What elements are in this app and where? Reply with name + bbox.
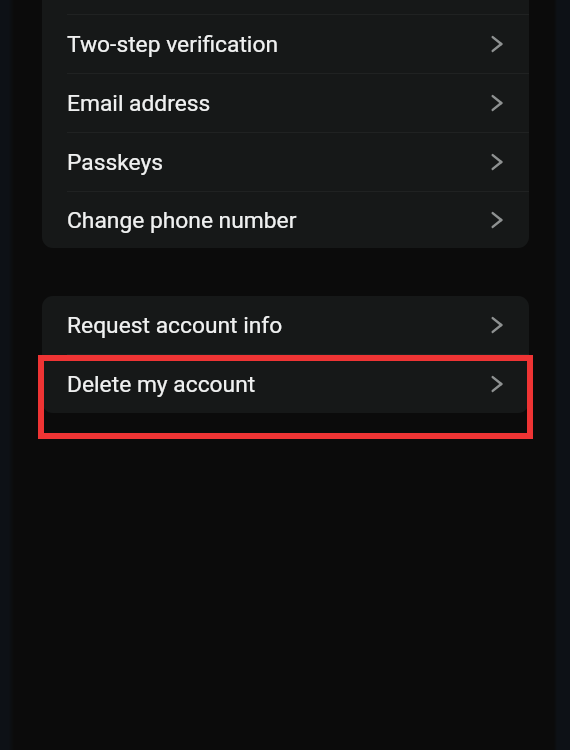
button[interactable]: Passkeys: [42, 133, 529, 191]
button[interactable]: Two-step verification: [42, 15, 529, 73]
staticText: Passkeys: [67, 149, 164, 176]
staticText: Delete my account: [67, 371, 256, 398]
staticText: Email address: [67, 90, 211, 117]
button[interactable]: Email address: [42, 74, 529, 132]
staticText: Request account info: [67, 312, 283, 339]
staticText: Two-step verification: [67, 31, 278, 58]
button[interactable]: Request account info: [42, 296, 529, 354]
button[interactable]: Delete my account: [42, 355, 529, 413]
staticText: Change phone number: [67, 207, 297, 234]
button[interactable]: Change phone number: [42, 192, 529, 248]
